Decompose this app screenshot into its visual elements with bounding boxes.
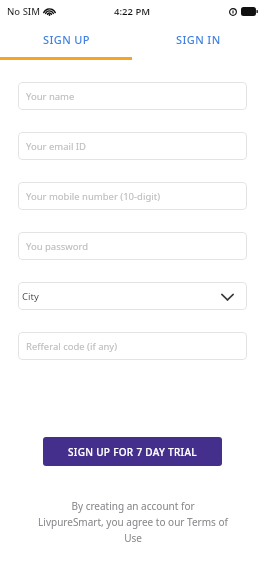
button[interactable]: Your name	[18, 82, 247, 110]
staticText: City	[22, 290, 39, 303]
button[interactable]: SIGN UP FOR 7 DAY TRIAL	[43, 437, 222, 466]
staticText: SIGN IN	[176, 32, 221, 47]
staticText: 4:22 PM	[114, 5, 151, 18]
staticText: LivpureSmart, you agree to our Terms of	[38, 515, 228, 529]
staticText: By creating an account for	[71, 499, 195, 513]
button[interactable]: SIGN UP	[0, 22, 132, 57]
staticText: You password	[26, 240, 89, 253]
button[interactable]: Your email ID	[18, 132, 247, 160]
staticText: Refferal code (if any)	[26, 340, 118, 353]
staticText: Use	[124, 531, 142, 545]
other: Open city list	[220, 289, 235, 304]
staticText: Your email ID	[26, 140, 87, 153]
button[interactable]: City	[18, 282, 247, 310]
staticText: No SIM	[7, 5, 40, 18]
button[interactable]: Refferal code (if any)	[18, 332, 247, 360]
button[interactable]: You password	[18, 232, 247, 260]
staticText: SIGN UP FOR 7 DAY TRIAL	[68, 445, 197, 459]
staticText: Your name	[26, 90, 75, 103]
staticText: SIGN UP	[43, 32, 90, 47]
button[interactable]: SIGN IN	[132, 22, 265, 57]
staticText: Your mobile number (10-digit)	[26, 190, 160, 203]
button[interactable]: Your mobile number (10-digit)	[18, 182, 247, 210]
